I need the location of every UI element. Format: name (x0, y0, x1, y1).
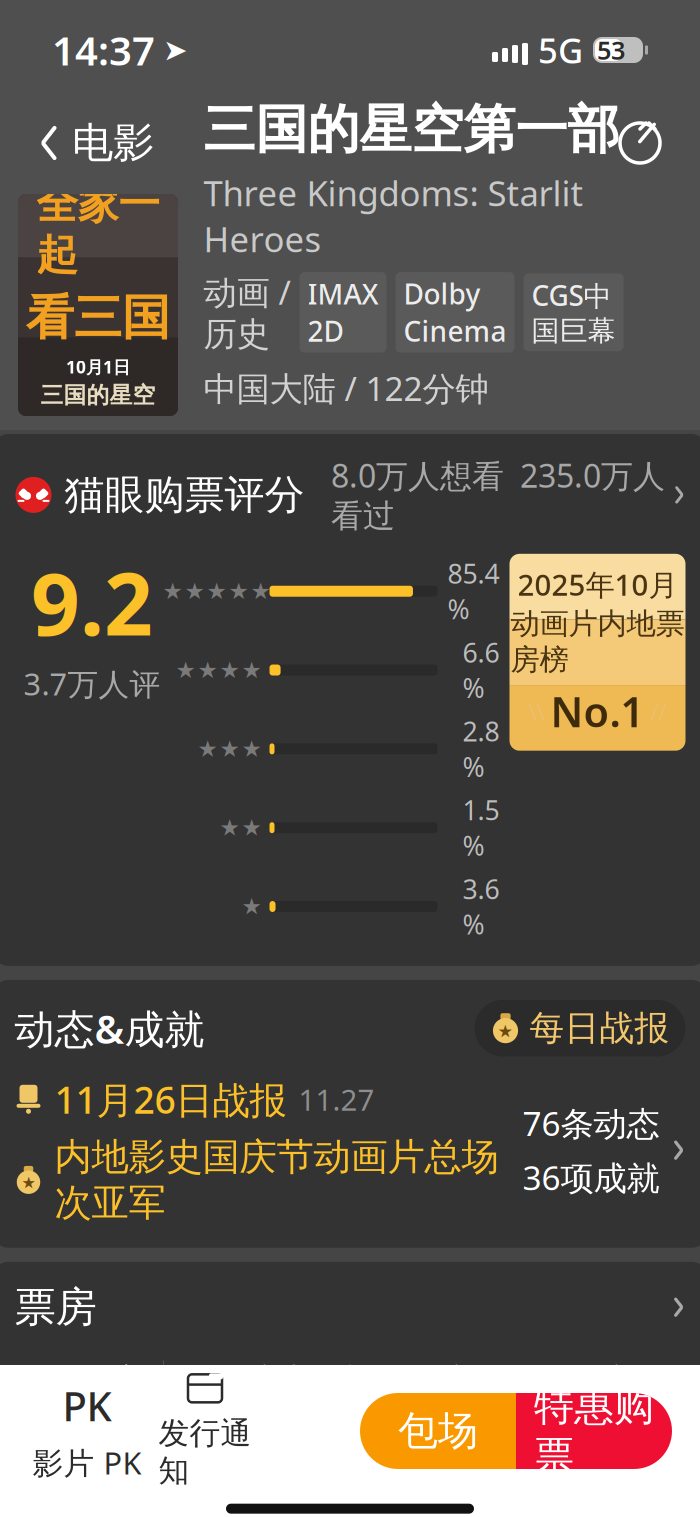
button[interactable]: 包场 (360, 1393, 516, 1469)
button[interactable]: ★ (474, 1000, 685, 1056)
staticText: ★ (219, 815, 239, 840)
staticText: Three Kingdoms: Starlit Heroes (204, 170, 584, 262)
staticText: 85.4% (447, 556, 499, 627)
button[interactable]: 发行通知 (146, 1366, 264, 1496)
staticText: IMAX 2D (308, 275, 379, 350)
staticText: ★ (241, 894, 261, 919)
button[interactable]: 2025.10.01 09:00 中国大陆上映 (上映战况) (204, 419, 640, 512)
staticText: ★ (241, 736, 261, 762)
staticText: 10月1日 (66, 355, 130, 378)
staticText: \\ (528, 696, 544, 726)
staticText: 11.27 (298, 1080, 374, 1119)
staticText: 今日看过 (174, 1361, 302, 1400)
button[interactable]: PK (28, 1373, 146, 1489)
staticText: ★ (175, 657, 195, 683)
staticText: ➤ (163, 33, 188, 67)
staticText: ★ (184, 578, 204, 604)
staticText: ★ (162, 578, 182, 604)
staticText: 首日票房 (334, 1497, 462, 1517)
staticText: 2025年10月 (517, 565, 677, 604)
staticText: 3.6% (462, 871, 499, 942)
staticText: 6.6% (462, 635, 499, 705)
staticText: 2.8% (462, 713, 499, 784)
staticText: 当前在看 (334, 1361, 462, 1400)
staticText: PK (62, 1379, 111, 1432)
staticText: 0 (174, 1408, 198, 1465)
staticText: 1.5% (462, 792, 499, 863)
staticText: 易中天 (75, 415, 120, 433)
staticText: ★ (21, 1174, 35, 1192)
staticText: 今日待看 (494, 1361, 622, 1400)
staticText: 5G (538, 27, 583, 73)
staticText: 中国大陆 / 122分钟 (204, 366, 489, 410)
button[interactable]: 特惠购票 (516, 1393, 672, 1469)
staticText: Dolby Cinema (404, 275, 507, 350)
button[interactable]: 猫眼购票评分 (0, 434, 700, 546)
staticText: 动画片内地票房榜 (510, 606, 684, 678)
button[interactable]: 11月26日战报 (0, 1056, 700, 1248)
staticText: 9.2 (31, 546, 153, 659)
staticText: 今日票房 (14, 1361, 142, 1400)
staticText: 影片 PK (32, 1442, 141, 1483)
button[interactable]: 票房 (0, 1262, 700, 1345)
staticText: 三国的星空第一部 (204, 98, 620, 162)
staticText: -- (14, 1408, 42, 1465)
staticText: 3.7万人评 (23, 663, 160, 704)
staticText: 36项成就 (522, 1155, 659, 1199)
staticText: // (650, 696, 666, 726)
staticText: 三国的星空 (40, 381, 155, 409)
staticText: 电影 (72, 118, 154, 168)
staticText: ★ (250, 578, 270, 604)
button[interactable]: 分享 (608, 111, 672, 175)
staticText: 11月26日战报 (54, 1074, 286, 1124)
staticText: 14:37 (52, 23, 155, 76)
staticText: 动画 / 历史 (204, 270, 291, 355)
staticText: 8.0万人想看 235.0万人看过 (331, 454, 665, 536)
staticText: ★ (219, 736, 239, 762)
staticText: ★ (206, 578, 226, 604)
staticText: CGS中国巨幕 (531, 276, 615, 348)
staticText: 每日战报 (529, 1007, 669, 1049)
staticText: 76条动态 (522, 1101, 659, 1145)
staticText: 0 (494, 1408, 518, 1465)
staticText: ★ (241, 815, 261, 840)
staticText: ★ (197, 657, 217, 683)
staticText: ★ (197, 736, 217, 762)
staticText: 猫眼购票评分 (64, 470, 304, 519)
staticText: 包场 (398, 1406, 478, 1455)
staticText: ★ (241, 657, 261, 683)
button[interactable]: 电影 (28, 110, 164, 176)
staticText: 动态&成就 (14, 1002, 204, 1055)
staticText: 看三国 (26, 288, 170, 347)
staticText: 53 (597, 33, 625, 67)
staticText: 特惠购票 (534, 1382, 654, 1480)
staticText: 发行通知 (158, 1414, 251, 1490)
staticText: 2025.10.01 09:00 中国大陆上映 (上映战况) (204, 423, 623, 508)
staticText: 累计人次 (174, 1497, 302, 1517)
staticText: ★ (219, 657, 239, 683)
staticText: 票房 (14, 1282, 96, 1333)
staticText: ★ (228, 578, 248, 604)
staticText: 内地影史国庆节动画片总场次亚军 (54, 1134, 498, 1226)
staticText: ★ (497, 1021, 513, 1041)
staticText: 全家一起 (36, 179, 159, 280)
staticText: No.1 (550, 684, 644, 739)
